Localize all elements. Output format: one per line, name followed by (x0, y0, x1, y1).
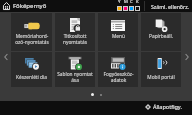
staticText: Memóriahord- ozó-nyomtatás (15, 33, 49, 45)
button[interactable]: Toner levels (117, 0, 140, 12)
button[interactable]: Főképernyő (0, 2, 50, 10)
staticText: Menü (112, 33, 125, 40)
staticText: Főképernyő (13, 2, 47, 10)
staticText: Mobil portál (147, 74, 175, 81)
button[interactable]: Állapotfigy. (145, 103, 192, 110)
button[interactable]: Next page (181, 12, 192, 101)
button[interactable]: Papírbeáll. (141, 13, 181, 51)
button[interactable]: Mobil portál (141, 52, 181, 87)
button[interactable]: Previous page (0, 12, 11, 101)
staticText: Állapotfigy. (153, 103, 182, 110)
staticText: C (130, 0, 133, 5)
staticText: Sablon nyomtat ása (57, 71, 93, 83)
button[interactable]: Készenléti dia (11, 52, 52, 87)
button[interactable]: Sablon nyomtat ása (55, 52, 95, 87)
button[interactable]: Memóriahord- ozó-nyomtatás (11, 13, 52, 51)
staticText: Fogyóeszköz- adatok (103, 71, 134, 83)
button[interactable]: Menü (98, 13, 138, 51)
staticText: Y (118, 0, 121, 5)
button[interactable]: Fogyóeszköz- adatok (98, 52, 138, 87)
staticText: Készenléti dia (16, 74, 47, 81)
staticText: Papírbeáll. (149, 33, 173, 40)
button[interactable]: Száml. ellenőrz. (151, 3, 189, 10)
button[interactable]: Titkosított nyomtatás (55, 13, 95, 51)
staticText: M (124, 0, 128, 5)
staticText: K (136, 0, 139, 5)
staticText: Titkosított nyomtatás (63, 33, 87, 45)
button[interactable]: Page 1 (91, 93, 94, 96)
